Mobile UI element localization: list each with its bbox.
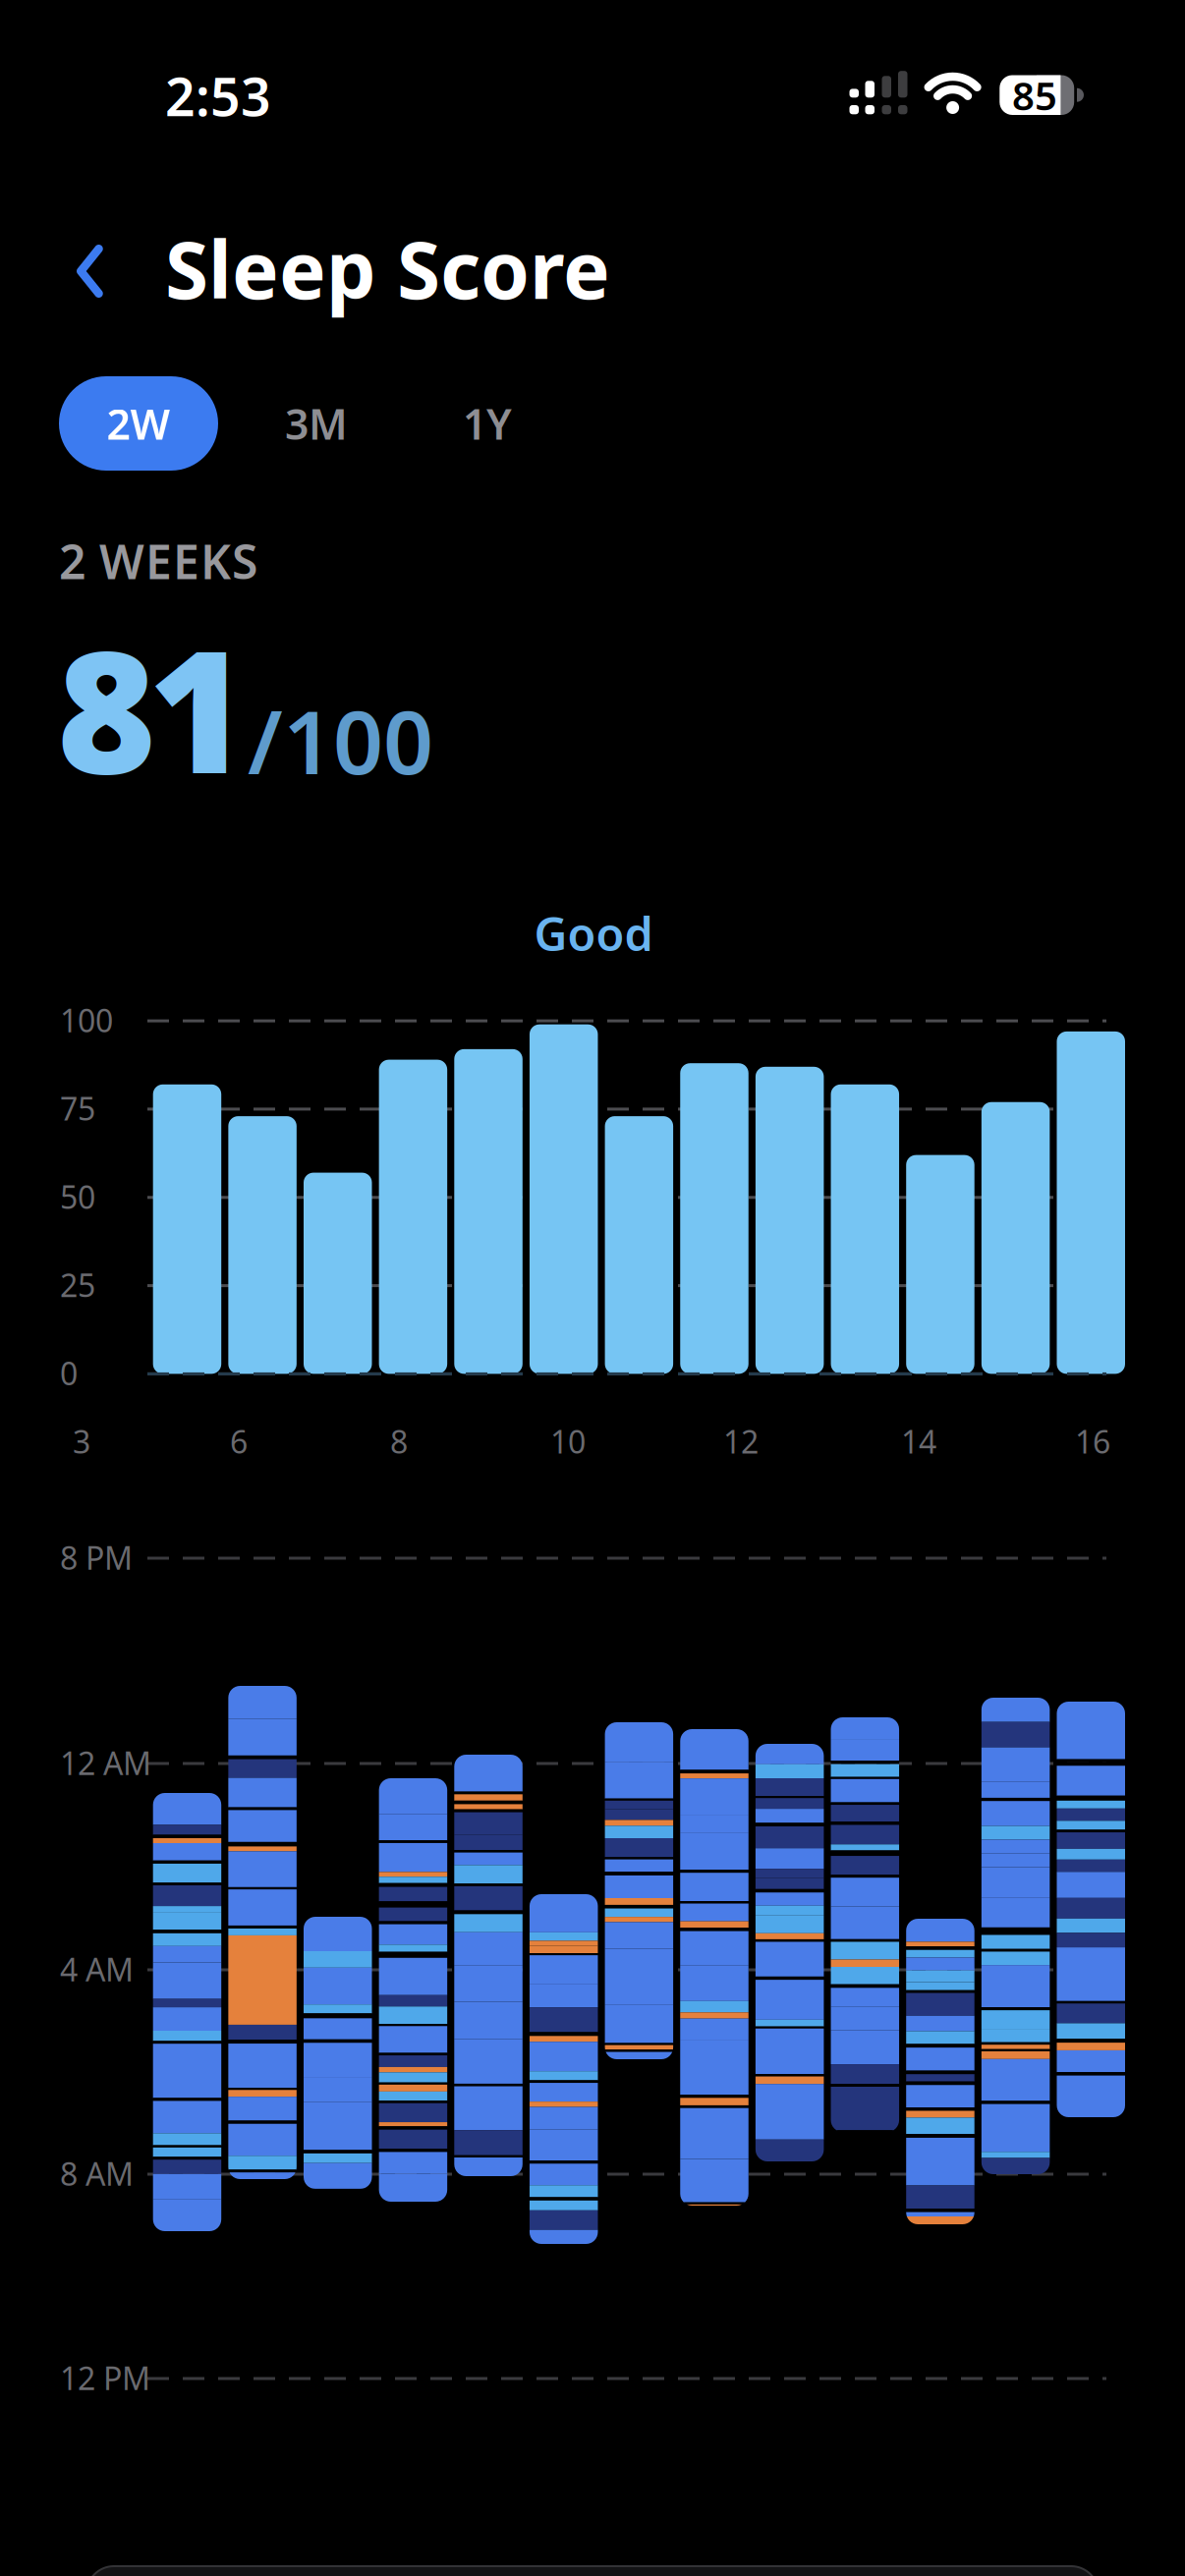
staticText: 1Y <box>463 396 512 451</box>
staticText: 8 AM <box>60 2153 134 2194</box>
button[interactable]: Back <box>77 245 103 298</box>
staticText: 25 <box>60 1264 95 1306</box>
staticText: 8 <box>390 1420 408 1462</box>
staticText: 2:53 <box>165 61 271 131</box>
staticText: Sleep Score <box>165 216 610 320</box>
staticText: 50 <box>60 1176 95 1218</box>
staticText: 10 <box>550 1420 586 1462</box>
staticText: 4 AM <box>60 1948 134 1990</box>
staticText: 8 PM <box>60 1537 133 1578</box>
staticText: 12 AM <box>60 1742 151 1784</box>
staticText: 2 WEEKS <box>59 530 257 592</box>
staticText: 85 <box>1012 69 1057 121</box>
staticText: 75 <box>60 1087 95 1129</box>
staticText: 16 <box>1075 1420 1110 1462</box>
button[interactable]: 1Y <box>419 376 556 471</box>
staticText: 3 <box>73 1420 90 1462</box>
staticText: 100 <box>60 999 113 1041</box>
staticText: 12 PM <box>60 2357 150 2399</box>
staticText: 2W <box>107 396 170 451</box>
staticText: 6 <box>230 1420 248 1462</box>
staticText: Good <box>534 903 653 964</box>
staticText: 81 <box>57 595 248 820</box>
button[interactable]: 3M <box>248 376 385 471</box>
staticText: /100 <box>248 682 433 798</box>
button[interactable]: 2W <box>59 376 218 471</box>
staticText: 3M <box>285 396 348 451</box>
staticText: 0 <box>60 1352 78 1394</box>
staticText: 12 <box>723 1420 759 1462</box>
staticText: 14 <box>901 1420 936 1462</box>
